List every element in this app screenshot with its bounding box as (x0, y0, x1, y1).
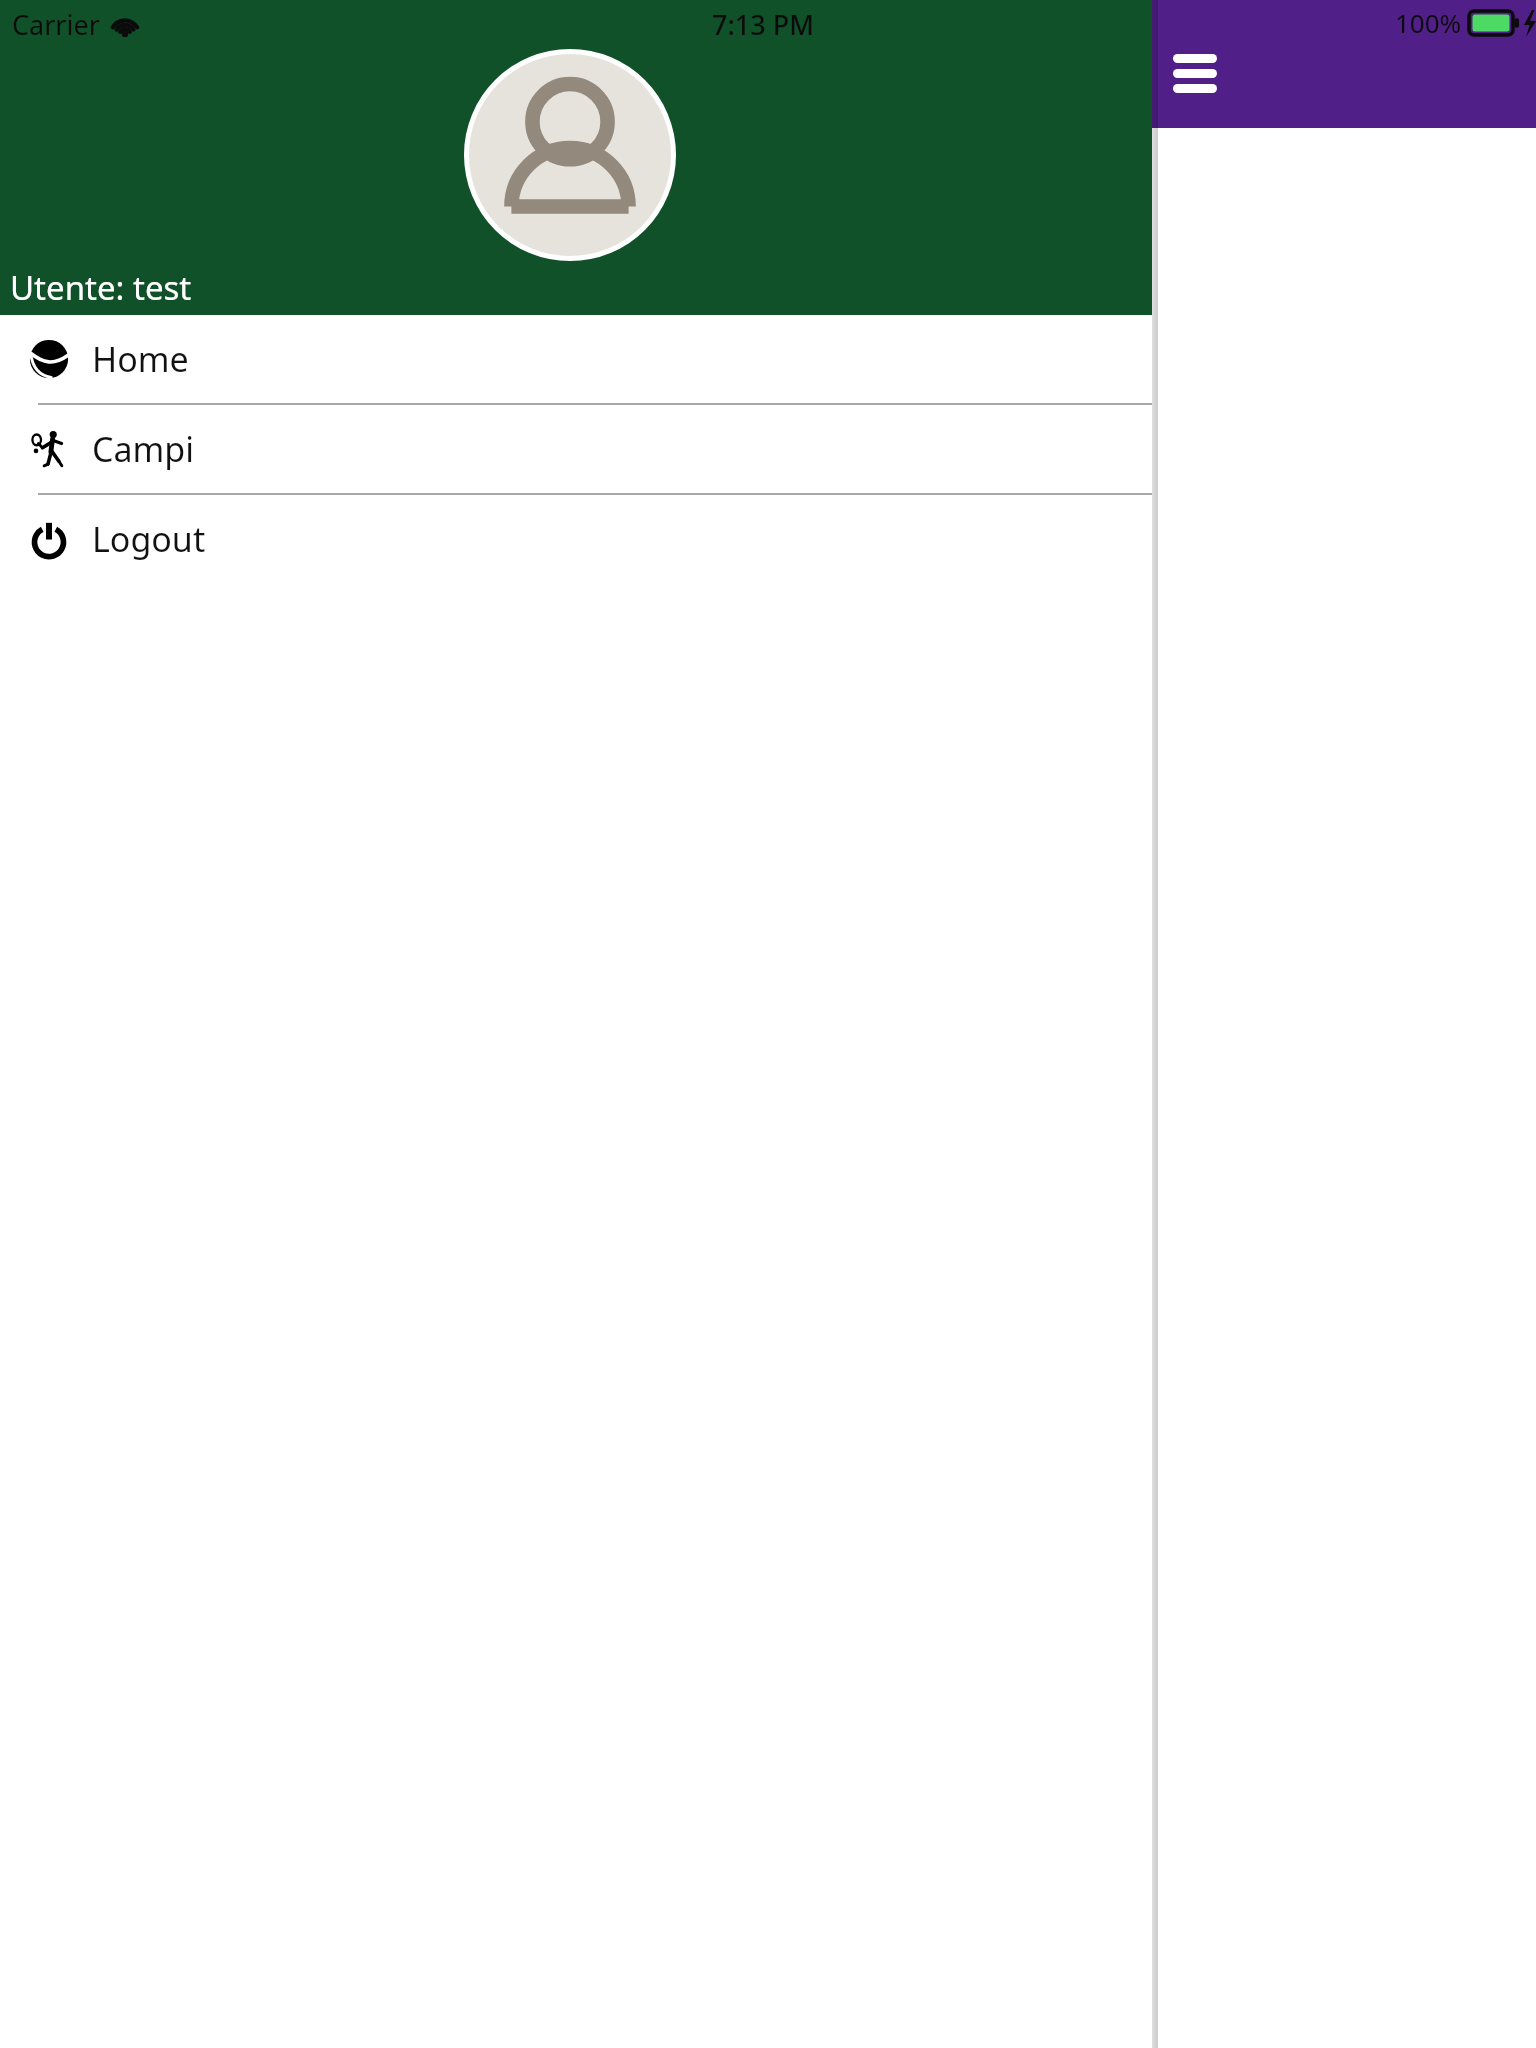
button[interactable]: Home (0, 315, 1152, 403)
button[interactable]: Open navigation menu (1173, 48, 1233, 98)
button[interactable]: Campi (0, 405, 1152, 493)
staticText: Utente: test (10, 265, 192, 310)
button[interactable]: User avatar (469, 54, 671, 256)
staticText: Campi (92, 426, 195, 472)
button[interactable]: Logout (0, 495, 1152, 583)
staticText: 7:13 PM (712, 6, 814, 43)
staticText: Logout (92, 516, 206, 562)
staticText: 100% (1395, 5, 1462, 40)
staticText: Carrier (12, 6, 100, 43)
staticText: Home (92, 336, 189, 382)
